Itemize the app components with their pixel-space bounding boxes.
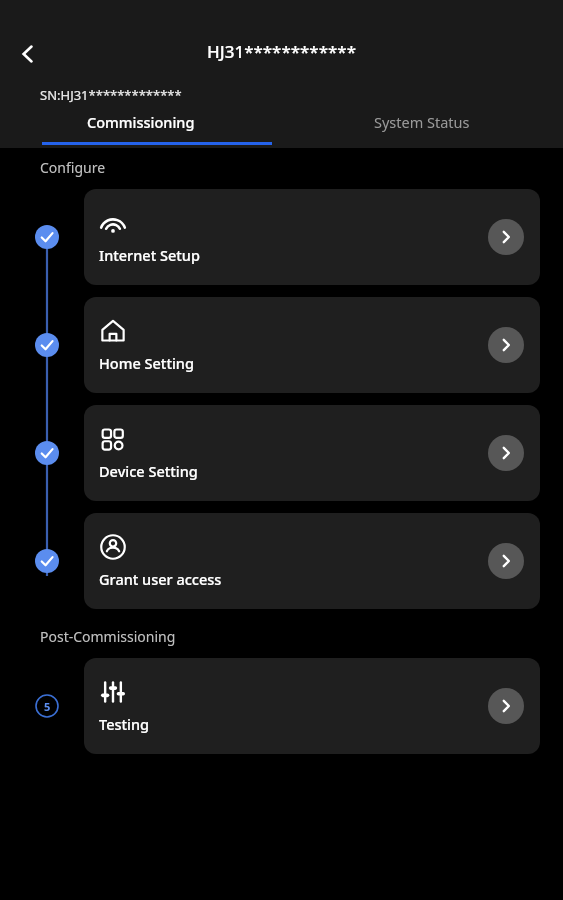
staticText: Commissioning (87, 112, 195, 132)
button[interactable]: System Status (281, 112, 563, 148)
button[interactable]: Commissioning (0, 112, 281, 148)
staticText: Device Setting (99, 461, 198, 481)
staticText: SN:HJ31************* (40, 86, 182, 104)
button[interactable]: Internet Setup (84, 189, 540, 285)
staticText: Internet Setup (99, 245, 200, 265)
button[interactable]: Device Setting (84, 405, 540, 501)
staticText: Post-Commissioning (40, 627, 176, 646)
staticText: Testing (99, 714, 150, 734)
button[interactable]: Open Testing (488, 688, 524, 724)
button[interactable]: Open Device Setting (488, 435, 524, 471)
button[interactable]: Open Grant user access (488, 543, 524, 579)
staticText: Grant user access (99, 569, 222, 589)
staticText: System Status (374, 112, 470, 132)
staticText: HJ31************ (0, 40, 563, 63)
button[interactable]: Open Home Setting (488, 327, 524, 363)
button[interactable]: Open Internet Setup (488, 219, 524, 255)
button[interactable]: Back (6, 32, 50, 76)
staticText: 5 (44, 699, 51, 714)
button[interactable]: Testing (84, 658, 540, 754)
button[interactable]: Grant user access (84, 513, 540, 609)
button[interactable]: Home Setting (84, 297, 540, 393)
staticText: Configure (40, 158, 106, 177)
staticText: Home Setting (99, 353, 194, 373)
